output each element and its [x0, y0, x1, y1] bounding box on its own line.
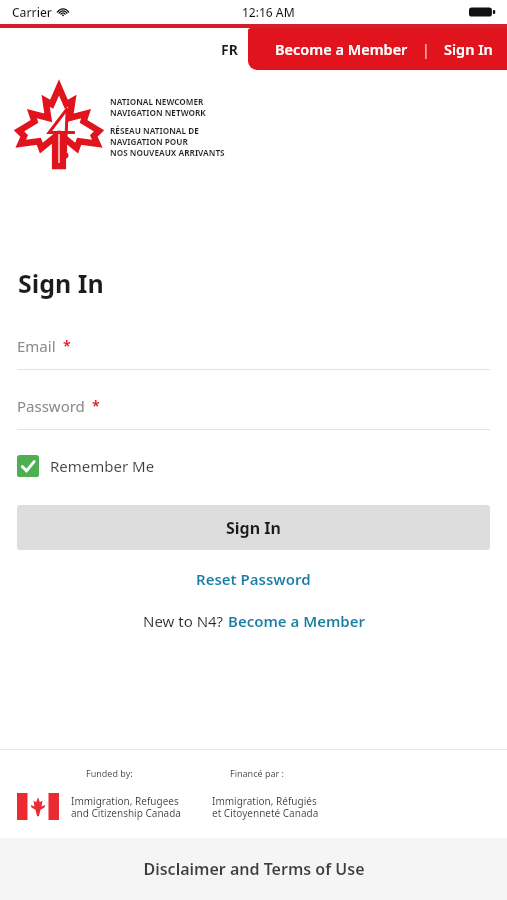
button[interactable]: Remember Me — [17, 455, 155, 477]
staticText: Become a Member — [275, 39, 408, 59]
staticText: Sign In — [444, 39, 493, 59]
button[interactable]: Sign In — [430, 28, 507, 70]
staticText: | — [422, 40, 430, 59]
button[interactable]: Password — [17, 396, 490, 430]
staticText: NATIONAL NEWCOMER NAVIGATION NETWORK — [110, 96, 206, 118]
staticText: Sign In — [226, 517, 281, 539]
staticText: Reset Password — [196, 569, 311, 589]
staticText: 12:16 AM — [242, 4, 295, 20]
button[interactable]: Email — [17, 336, 490, 370]
staticText: Funded by: — [86, 767, 230, 779]
button[interactable]: Reset Password — [17, 566, 490, 592]
button[interactable]: FR — [201, 28, 257, 70]
staticText: FR — [221, 40, 238, 59]
staticText: Sign In — [18, 266, 104, 300]
staticText: Email — [17, 336, 56, 356]
staticText: New to N4? — [143, 611, 228, 631]
staticText: * — [92, 396, 100, 415]
staticText: * — [63, 336, 71, 355]
staticText: Disclaimer and Terms of Use — [143, 858, 365, 880]
button[interactable]: Disclaimer and Terms of Use — [0, 838, 507, 900]
staticText: Remember Me — [50, 456, 155, 476]
button[interactable]: Sign In — [17, 505, 490, 550]
button[interactable]: Become a Member — [228, 608, 365, 634]
staticText: Become a Member — [228, 611, 365, 631]
staticText: Carrier — [12, 4, 52, 20]
staticText: Immigration, Réfugiés et Citoyenneté Can… — [212, 794, 319, 820]
staticText: Password — [17, 396, 85, 416]
staticText: Immigration, Refugees and Citizenship Ca… — [71, 794, 200, 820]
staticText: Financé par : — [230, 767, 284, 779]
staticText: RÉSEAU NATIONAL DE NAVIGATION POUR NOS N… — [110, 125, 225, 158]
button[interactable]: Become a Member — [261, 28, 422, 70]
